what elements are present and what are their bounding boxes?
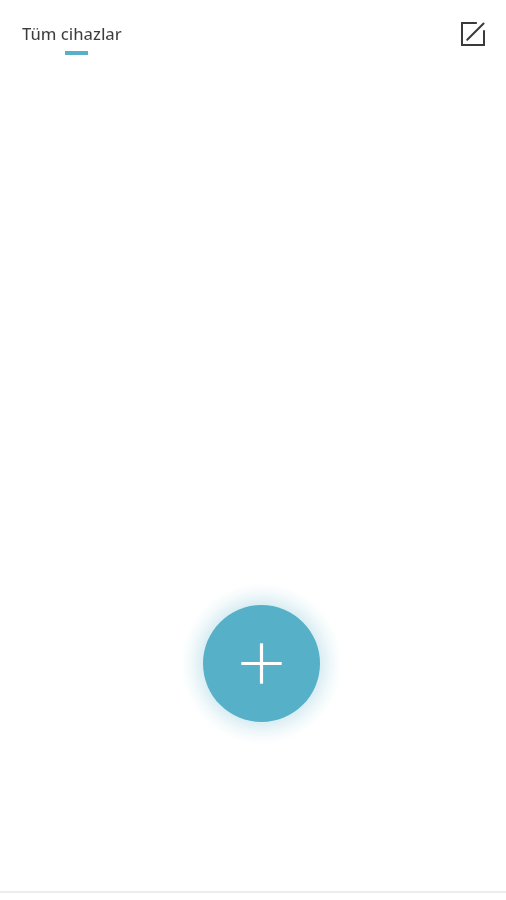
button[interactable]: Cihaz ekle <box>203 605 320 722</box>
button[interactable]: Düzenle <box>452 13 494 55</box>
staticText: Tüm cihazlar <box>22 22 122 44</box>
button[interactable]: Tüm cihazlar <box>14 12 142 62</box>
